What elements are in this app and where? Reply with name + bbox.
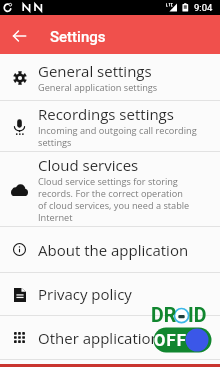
staticText: General application settings	[38, 81, 158, 94]
staticText: Settings	[50, 28, 106, 46]
staticText: Recordings settings	[38, 104, 174, 124]
staticText: Privacy policy	[38, 284, 132, 304]
staticText: OFF	[154, 331, 188, 350]
staticText: DR	[151, 304, 177, 327]
button[interactable]: Privacy policy	[0, 273, 220, 315]
staticText: About the application	[38, 240, 189, 260]
staticText: 9:04	[194, 2, 213, 13]
staticText: General settings	[38, 61, 152, 81]
staticText: Other applications	[38, 328, 167, 348]
staticText: ID	[188, 304, 207, 327]
button[interactable]: Recordings settings	[0, 101, 220, 151]
staticText: Cloud services	[38, 155, 139, 175]
button[interactable]: General settings	[0, 54, 220, 100]
button[interactable]: About the application	[0, 227, 220, 272]
staticText: Incoming and outgoing call recording set…	[38, 124, 197, 148]
button[interactable]: Other applications	[0, 316, 220, 359]
button[interactable]: Back	[0, 17, 38, 55]
staticText: Cloud service settings for storing recor…	[38, 175, 190, 223]
button[interactable]: Cloud services	[0, 152, 220, 226]
